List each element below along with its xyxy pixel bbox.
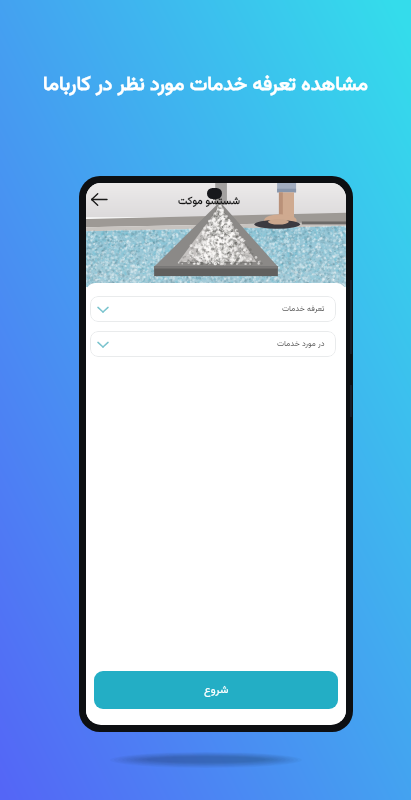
button[interactable]: Back [88, 188, 110, 210]
button[interactable]: در مورد خدمات [90, 331, 336, 357]
staticText: شروع [204, 682, 229, 699]
staticText: مشاهده تعرفه خدمات مورد نظر در کارباما [14, 69, 397, 100]
staticText: شستشو موکت [178, 193, 240, 209]
staticText: در مورد خدمات [277, 338, 325, 351]
button[interactable]: تعرفه خدمات [90, 296, 336, 322]
staticText: تعرفه خدمات [282, 303, 325, 316]
button[interactable]: شروع [94, 671, 338, 709]
